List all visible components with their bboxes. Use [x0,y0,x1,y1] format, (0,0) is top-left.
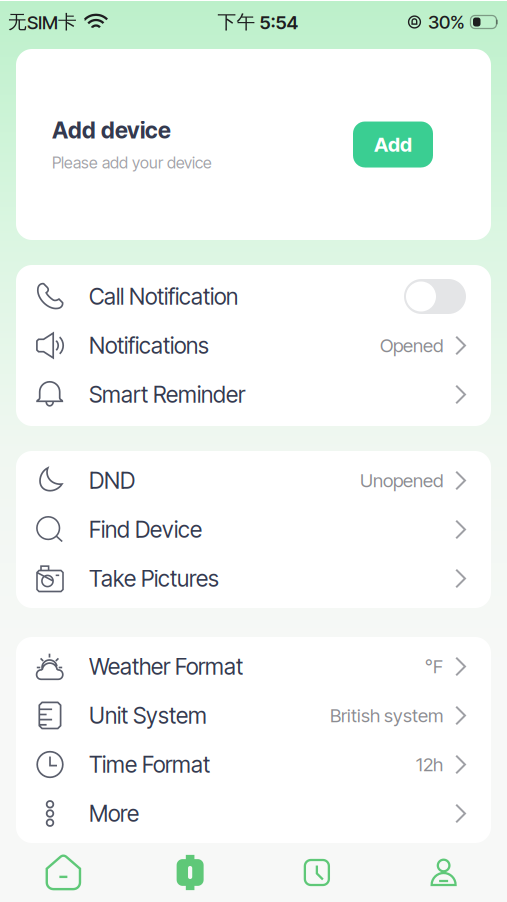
staticText: Add device [52,117,171,144]
staticText: Notifications [89,332,209,359]
button[interactable]: Device [127,843,254,902]
button[interactable]: Watch Faces [253,843,380,902]
button[interactable]: More [16,789,491,838]
staticText: 12h [416,753,443,776]
staticText: Add [374,132,412,157]
button[interactable]: Weather Format [16,642,491,691]
staticText: Take Pictures [89,565,219,592]
button[interactable]: Call Notification [16,272,491,321]
button[interactable]: Take Pictures [16,554,491,603]
button[interactable]: Smart Reminder [16,370,491,419]
staticText: Weather Format [89,653,243,680]
button[interactable]: Time Format [16,740,491,789]
staticText: Time Format [89,751,210,778]
staticText: Unit System [89,702,207,729]
staticText: Smart Reminder [89,381,245,408]
button[interactable]: Unit System [16,691,491,740]
staticText: DND [89,467,135,494]
staticText: More [89,800,139,827]
button[interactable]: Home [0,843,127,902]
staticText: 无SIM卡 [8,10,77,34]
staticText: Call Notification [89,283,238,310]
button[interactable]: Add [353,121,433,167]
staticText: Opened [380,334,443,357]
staticText: 下午 5:54 [217,10,298,34]
staticText: 30% [428,11,465,33]
staticText: Find Device [89,516,202,543]
button[interactable]: Profile [380,843,507,902]
staticText: °F [425,655,443,678]
staticText: British system [330,704,443,727]
button[interactable]: Notifications [16,321,491,370]
staticText: Please add your device [52,153,212,172]
button[interactable]: DND [16,456,491,505]
button[interactable]: Find Device [16,505,491,554]
staticText: Unopened [360,469,443,492]
